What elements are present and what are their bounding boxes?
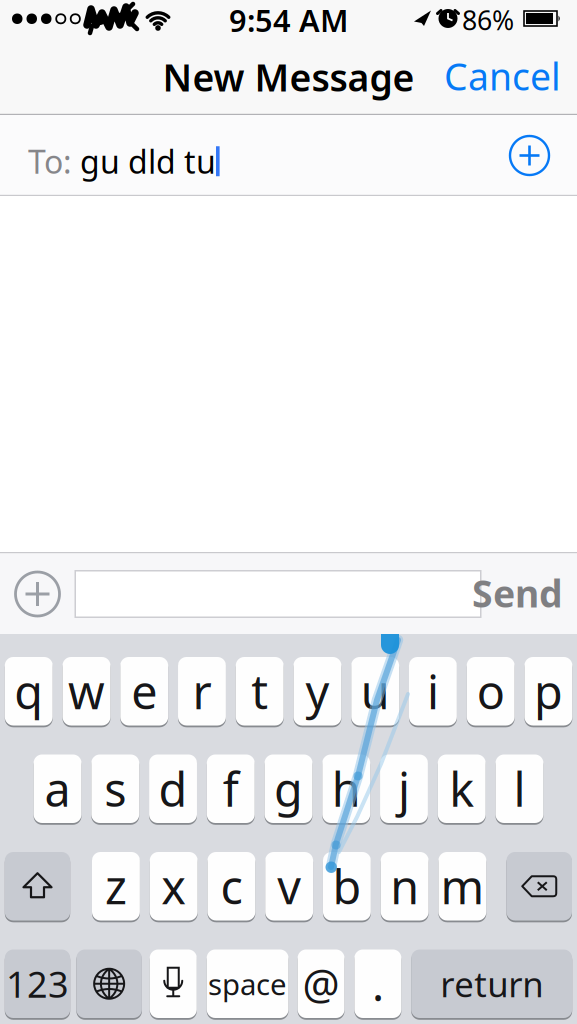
staticText: n (390, 855, 419, 917)
button[interactable]: Attach (13, 570, 61, 618)
button[interactable]: z (92, 851, 140, 921)
staticText: 123 (6, 960, 69, 1008)
button[interactable]: a (34, 753, 81, 824)
staticText: a (44, 758, 70, 820)
staticText: d (158, 758, 187, 820)
button[interactable]: Cancel (421, 58, 561, 94)
button[interactable]: Add Contact (508, 134, 551, 177)
button[interactable]: g (265, 753, 312, 824)
button[interactable]: f (207, 753, 255, 824)
button[interactable]: j (380, 753, 428, 824)
staticText: f (223, 758, 239, 820)
staticText: New Message (162, 52, 414, 102)
staticText: q (14, 660, 43, 722)
staticText: m (440, 855, 484, 917)
button[interactable]: k (438, 753, 486, 824)
button[interactable]: s (91, 753, 139, 824)
button[interactable]: Dictate (150, 948, 197, 1019)
button[interactable]: p (524, 656, 572, 726)
staticText: i (427, 660, 439, 722)
staticText: g (274, 758, 303, 820)
staticText: e (131, 660, 157, 722)
staticText: v (277, 855, 301, 917)
staticText: u (361, 660, 390, 722)
staticText: Send (472, 568, 563, 618)
staticText: c (220, 855, 242, 917)
button[interactable]: i (409, 656, 457, 726)
staticText: b (332, 855, 361, 917)
staticText: p (534, 660, 563, 722)
staticText: 9:54 AM (229, 0, 348, 40)
button[interactable]: return (411, 948, 572, 1019)
staticText: To: (28, 140, 80, 182)
button[interactable]: h (322, 753, 370, 824)
button[interactable]: o (467, 656, 515, 726)
staticText: space (208, 964, 287, 1003)
staticText: o (477, 660, 505, 722)
staticText: w (68, 660, 105, 722)
button[interactable]: Numbers (5, 948, 70, 1019)
staticText: . (372, 954, 384, 1014)
staticText: k (449, 758, 474, 820)
button[interactable]: r (178, 656, 226, 726)
staticText: return (440, 961, 543, 1007)
staticText: l (513, 758, 525, 820)
staticText: s (104, 758, 126, 820)
button[interactable]: Send (463, 575, 563, 611)
button[interactable]: n (381, 851, 429, 921)
button[interactable]: y (293, 656, 341, 726)
staticText: z (105, 855, 127, 917)
button[interactable]: Next keyboard (76, 948, 142, 1019)
button[interactable]: q (5, 656, 53, 726)
staticText: x (161, 855, 186, 917)
button[interactable]: at sign (298, 948, 344, 1019)
staticText: gu dld tu (80, 140, 216, 182)
staticText: y (305, 660, 329, 722)
button[interactable]: l (495, 753, 543, 824)
button[interactable]: Message field (74, 570, 481, 618)
staticText: @ (303, 956, 340, 1011)
button[interactable]: period (354, 948, 401, 1019)
button[interactable]: t (236, 656, 284, 726)
staticText: Cancel (444, 51, 561, 101)
button[interactable]: u (351, 656, 399, 726)
staticText: j (398, 758, 410, 820)
staticText: t (251, 660, 268, 722)
button[interactable]: space (207, 948, 288, 1019)
button[interactable]: w (62, 656, 110, 726)
button[interactable]: c (207, 851, 255, 921)
staticText: r (192, 660, 211, 722)
button[interactable]: b (323, 851, 371, 921)
staticText: h (332, 758, 361, 820)
button[interactable]: d (149, 753, 197, 824)
button[interactable]: e (120, 656, 168, 726)
button[interactable]: To recipient field (0, 115, 577, 196)
button[interactable]: x (150, 851, 198, 921)
button[interactable]: Delete (506, 851, 572, 921)
button[interactable]: Shift (5, 851, 70, 921)
button[interactable]: v (265, 851, 313, 921)
button[interactable]: m (438, 851, 486, 921)
staticText: 86% (462, 2, 514, 38)
